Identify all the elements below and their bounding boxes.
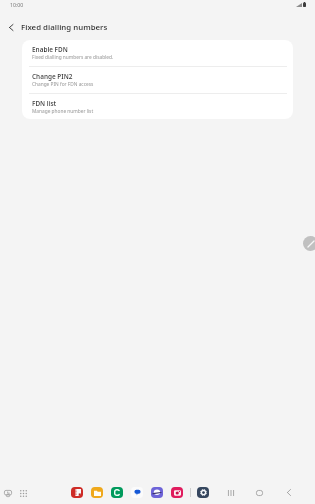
button[interactable]: Apps	[17, 487, 30, 500]
button[interactable]: Recent apps	[1, 487, 14, 500]
staticText: Enable FDN	[32, 45, 68, 54]
button[interactable]: Enable FDN	[22, 40, 293, 67]
button[interactable]: App	[71, 487, 83, 498]
button[interactable]: Change PIN2	[22, 67, 293, 94]
staticText: Manage phone number list	[32, 108, 94, 115]
button[interactable]: App	[91, 487, 103, 498]
button[interactable]: Recents	[224, 486, 237, 499]
button[interactable]: Edge panel	[303, 236, 315, 251]
button[interactable]: App	[111, 487, 123, 498]
staticText: Fixed dialling numbers	[21, 22, 108, 33]
button[interactable]: App	[197, 487, 209, 498]
button[interactable]: Back	[0, 15, 21, 40]
staticText: Change PIN2	[32, 72, 73, 81]
button[interactable]: App	[131, 487, 143, 498]
button[interactable]: Back	[282, 486, 295, 499]
button[interactable]: App	[171, 487, 183, 498]
button[interactable]: App	[151, 487, 163, 498]
staticText: Change PIN for FDN access	[32, 81, 94, 88]
button[interactable]: Home	[253, 486, 266, 499]
button[interactable]: FDN list	[22, 94, 293, 119]
staticText: FDN list	[32, 99, 57, 108]
staticText: Fixed dialling numbers are disabled.	[32, 54, 114, 61]
staticText: 10:00	[10, 1, 24, 8]
